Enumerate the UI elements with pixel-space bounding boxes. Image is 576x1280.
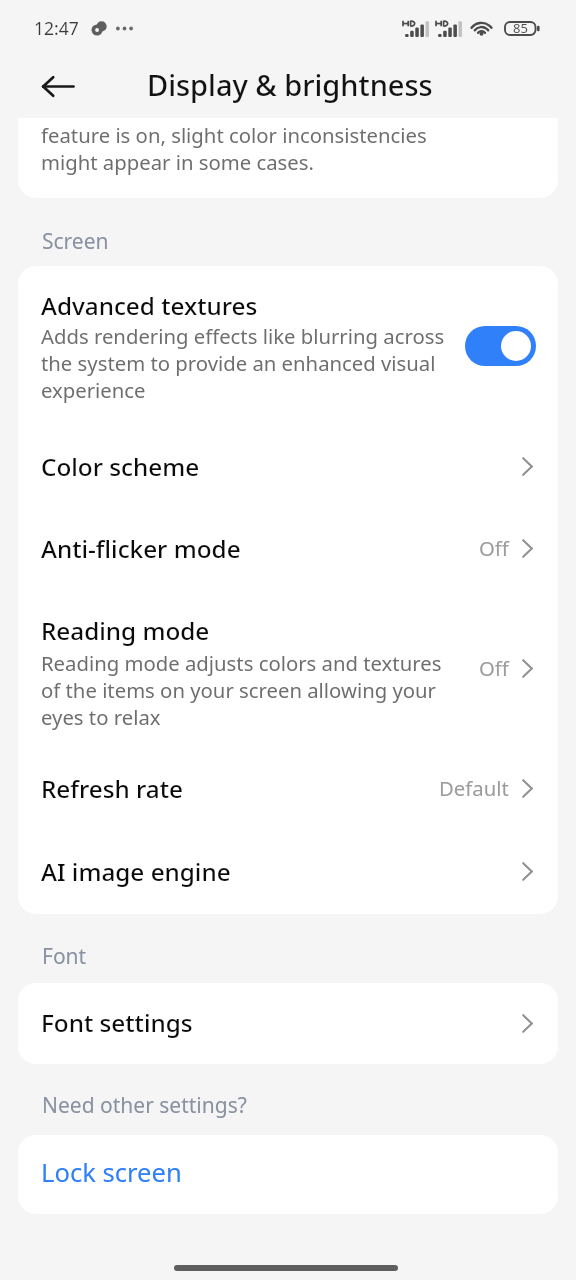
staticText: Advanced textures [41, 293, 258, 321]
staticText: Color scheme [41, 454, 200, 482]
button[interactable]: Refresh rate [18, 747, 558, 829]
staticText: Need other settings? [42, 1091, 247, 1120]
button[interactable]: Back [34, 63, 82, 111]
staticText: feature is on, slight color inconsistenc… [41, 121, 427, 148]
staticText: Font [42, 942, 87, 971]
button[interactable]: Advanced textures toggle [465, 326, 536, 366]
button[interactable]: Color scheme [18, 425, 558, 507]
staticText: Lock screen [41, 1155, 182, 1190]
button[interactable]: feature is on, slight color inconsistenc… [18, 118, 558, 198]
staticText: Reading mode [41, 618, 210, 646]
button[interactable]: Anti-flicker mode [18, 507, 558, 589]
staticText: Screen [42, 227, 109, 256]
button[interactable]: Reading mode [18, 589, 558, 747]
button[interactable]: Font settings [18, 983, 558, 1064]
staticText: 85 [513, 19, 528, 37]
staticText: Refresh rate [41, 776, 184, 804]
button[interactable]: Advanced textures [18, 266, 558, 425]
staticText: Off [479, 654, 509, 682]
staticText: might appear in some cases. [41, 148, 314, 175]
staticText: Font settings [41, 1010, 193, 1038]
staticText: AI image engine [41, 859, 231, 887]
staticText: Anti-flicker mode [41, 536, 241, 564]
staticText: Default [439, 774, 509, 802]
button[interactable]: Lock screen [18, 1135, 558, 1214]
staticText: Adds rendering effects like blurring acr… [41, 322, 447, 403]
staticText: Reading mode adjusts colors and textures… [41, 649, 447, 730]
staticText: Off [479, 534, 509, 562]
staticText: Display & brightness [147, 65, 433, 104]
button[interactable]: AI image engine [18, 829, 558, 914]
staticText: 12:47 [34, 16, 79, 40]
